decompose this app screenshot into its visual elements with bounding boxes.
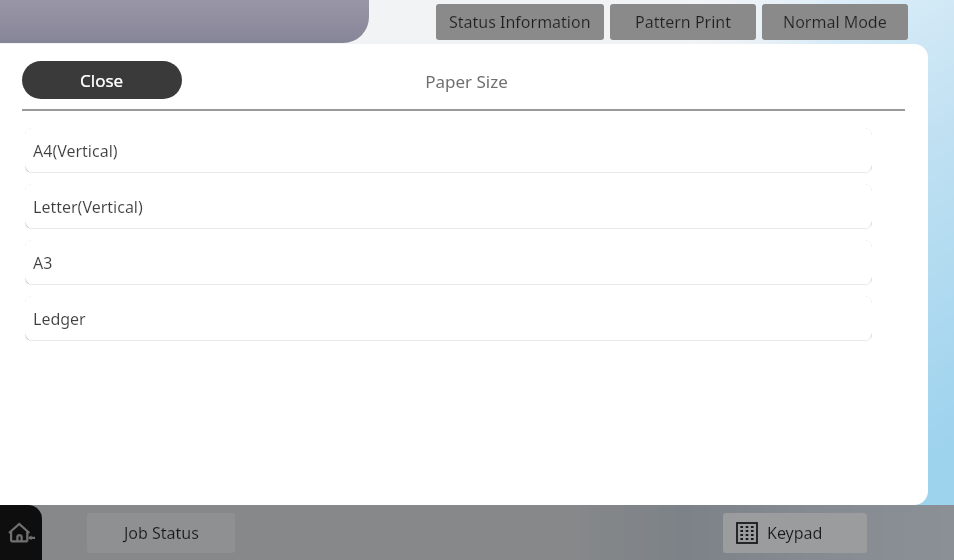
button[interactable]: A3 — [25, 240, 872, 285]
button[interactable]: Home — [0, 505, 42, 560]
staticText: Normal Mode — [783, 11, 887, 33]
staticText: A4(Vertical) — [33, 140, 118, 162]
staticText: Paper Size — [425, 70, 508, 93]
staticText: Letter(Vertical) — [33, 196, 143, 218]
staticText: Keypad — [767, 522, 823, 544]
button[interactable]: Letter(Vertical) — [25, 184, 872, 229]
button[interactable]: Close — [22, 61, 182, 99]
button[interactable]: Keypad — [723, 513, 867, 553]
staticText: A3 — [33, 252, 53, 274]
button[interactable]: Ledger — [25, 296, 872, 341]
staticText: Pattern Print — [635, 11, 731, 33]
button[interactable]: Status Information — [436, 4, 604, 40]
button[interactable]: Normal Mode — [762, 4, 908, 40]
staticText: Status Information — [449, 11, 591, 33]
staticText: Ledger — [33, 308, 86, 330]
staticText: Job Status — [124, 522, 199, 544]
button[interactable]: Job Status — [87, 513, 235, 553]
button[interactable]: Pattern Print — [610, 4, 756, 40]
staticText: Close — [80, 69, 124, 92]
button[interactable]: A4(Vertical) — [25, 128, 872, 173]
